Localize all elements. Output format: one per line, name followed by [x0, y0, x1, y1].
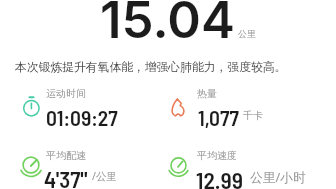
staticText: 01:09:27 — [46, 104, 118, 130]
staticText: 12.99 — [196, 165, 244, 189]
staticText: 4'37" — [44, 165, 88, 189]
staticText: 本次锻炼提升有氧体能，增强心肺能力，强度较高。 — [15, 60, 287, 75]
staticText: 公里 — [238, 28, 256, 39]
staticText: 15.04 — [100, 0, 235, 51]
staticText: 热量 — [197, 87, 217, 100]
staticText: 运动时间 — [46, 87, 86, 100]
staticText: 平均配速 — [46, 149, 86, 162]
staticText: 千卡 — [243, 109, 263, 122]
staticText: /公里 — [92, 169, 118, 183]
staticText: 平均速度 — [197, 149, 237, 162]
staticText: 公里/小时 — [250, 168, 306, 185]
staticText: 1,077 — [198, 104, 239, 130]
